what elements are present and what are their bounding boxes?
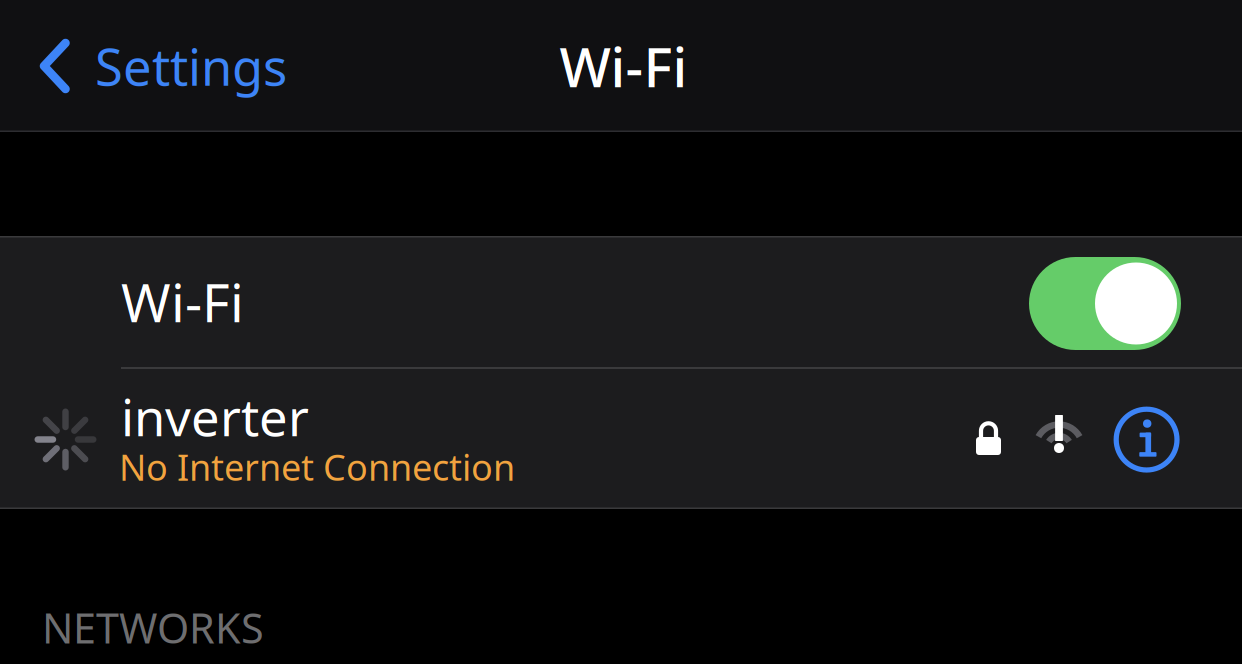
button[interactable]: Wi-Fi <box>0 236 1242 367</box>
staticText: Wi-Fi <box>559 30 687 102</box>
button[interactable]: More info about inverter <box>1111 406 1177 472</box>
button[interactable]: inverter <box>0 369 1242 509</box>
staticText: inverter <box>121 383 309 450</box>
staticText: Settings <box>95 32 287 100</box>
button[interactable]: Settings <box>0 0 309 132</box>
staticText: NETWORKS <box>42 600 264 655</box>
staticText: No Internet Connection <box>119 443 515 491</box>
staticText: Wi-Fi <box>121 266 244 337</box>
